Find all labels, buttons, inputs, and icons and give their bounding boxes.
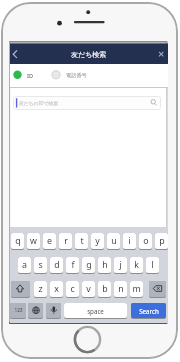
button[interactable]: z xyxy=(34,281,47,297)
button[interactable]: space xyxy=(64,303,127,318)
staticText: a xyxy=(22,259,27,271)
staticText: d xyxy=(54,259,60,271)
staticText: o xyxy=(143,235,149,247)
button[interactable]: c xyxy=(66,281,79,297)
staticText: x xyxy=(54,283,59,295)
button[interactable] xyxy=(156,49,167,60)
staticText: y xyxy=(95,235,100,247)
button[interactable]: d xyxy=(50,257,63,273)
button[interactable]: j xyxy=(114,257,127,273)
staticText: h xyxy=(102,259,108,271)
button[interactable]: Search xyxy=(131,303,166,318)
staticText: z xyxy=(38,283,43,295)
button[interactable]: a xyxy=(18,257,31,273)
button[interactable]: h xyxy=(98,257,111,273)
staticText: ID xyxy=(27,72,33,79)
button[interactable]: l xyxy=(146,257,159,273)
button[interactable]: g xyxy=(82,257,95,273)
button[interactable]: f xyxy=(66,257,79,273)
button[interactable]: r xyxy=(59,233,72,249)
staticText: e xyxy=(47,235,52,247)
button[interactable]: i xyxy=(123,233,136,249)
staticText: space xyxy=(87,307,104,315)
staticText: q xyxy=(15,235,21,247)
button[interactable]: s xyxy=(34,257,47,273)
button[interactable]: y xyxy=(91,233,104,249)
button[interactable] xyxy=(149,281,166,297)
staticText: l xyxy=(151,259,154,271)
button[interactable]: o xyxy=(139,233,152,249)
button[interactable]: v xyxy=(82,281,95,297)
staticText: r xyxy=(64,235,68,247)
staticText: 123 xyxy=(14,307,23,314)
staticText: k xyxy=(134,259,139,271)
staticText: u xyxy=(111,235,117,247)
staticText: c xyxy=(70,283,75,295)
button[interactable] xyxy=(46,303,61,318)
button[interactable]: b xyxy=(98,281,111,297)
staticText: j xyxy=(119,259,122,271)
button[interactable]: w xyxy=(27,233,40,249)
button[interactable]: u xyxy=(107,233,120,249)
button[interactable] xyxy=(13,96,161,110)
staticText: 電話番号 xyxy=(66,72,87,79)
button[interactable]: t xyxy=(75,233,88,249)
staticText: 友だち検索 xyxy=(71,50,107,59)
button[interactable] xyxy=(11,49,20,60)
button[interactable]: e xyxy=(43,233,56,249)
staticText: m xyxy=(132,283,141,295)
button[interactable]: p xyxy=(155,233,168,249)
button[interactable]: n xyxy=(114,281,127,297)
staticText: w xyxy=(30,235,37,247)
button[interactable]: k xyxy=(130,257,143,273)
button[interactable]: m xyxy=(130,281,143,297)
staticText: v xyxy=(86,283,91,295)
staticText: i xyxy=(128,235,131,247)
staticText: s xyxy=(38,259,43,271)
staticText: n xyxy=(118,283,124,295)
button[interactable] xyxy=(58,65,118,85)
staticText: g xyxy=(86,259,92,271)
button[interactable]: x xyxy=(50,281,63,297)
staticText: f xyxy=(71,259,75,271)
button[interactable] xyxy=(28,303,43,318)
staticText: b xyxy=(102,283,108,295)
staticText: t xyxy=(80,235,84,247)
button[interactable] xyxy=(12,65,58,85)
staticText: Search xyxy=(139,307,159,315)
button[interactable]: q xyxy=(11,233,24,249)
staticText: 友だちのIDで検索 xyxy=(19,100,59,107)
button[interactable]: 123 xyxy=(10,303,26,318)
button[interactable] xyxy=(11,281,30,297)
staticText: p xyxy=(159,235,165,247)
